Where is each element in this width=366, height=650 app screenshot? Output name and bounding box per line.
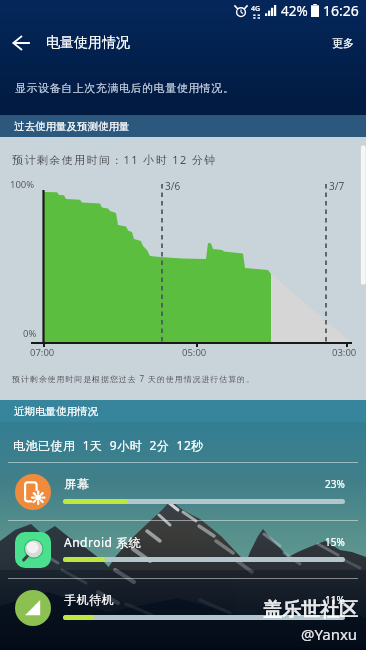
staticText: 屏幕 [64,476,89,491]
staticText: 100% [10,178,35,191]
staticText: 显示设备自上次充满电后的电量使用情况。 [15,81,235,95]
staticText: 电池已使用 1天 9小时 2分 12秒 [13,437,204,453]
staticText: 23% [325,477,345,491]
staticText: 0% [23,327,37,340]
staticText: 42% [281,2,308,20]
staticText: 4G [251,4,261,14]
staticText: 手机待机 [64,592,114,607]
button[interactable]: 屏幕 [0,463,366,520]
button[interactable]: 更多 [320,28,366,58]
staticText: 更多 [332,36,354,50]
staticText: 16:26 [323,1,359,20]
staticText: Android 系统 [64,534,142,550]
staticText: 3/6 [165,179,181,193]
staticText: 预计剩余使用时间：11 小时 12 分钟 [12,152,217,167]
staticText: 03:00 [332,346,357,359]
staticText: 05:00 [182,346,207,359]
button[interactable]: 返回 [4,26,38,60]
staticText: 过去使用量及预测使用量 [14,120,130,133]
button[interactable]: 手机待机 [0,579,366,636]
staticText: 11% [325,593,345,607]
staticText: 15% [325,535,345,549]
staticText: 盖乐世社区 [263,598,358,622]
staticText: 预计剩余使用时间是根据您过去 7 天的使用情况进行估算的。 [12,373,255,384]
staticText: @Yanxu [301,624,358,644]
staticText: 电量使用情况 [46,34,130,52]
staticText: 07:00 [30,346,55,359]
button[interactable]: Android 系统 [0,521,366,578]
staticText: 3/7 [329,179,345,193]
staticText: 近期电量使用情况 [14,405,98,418]
